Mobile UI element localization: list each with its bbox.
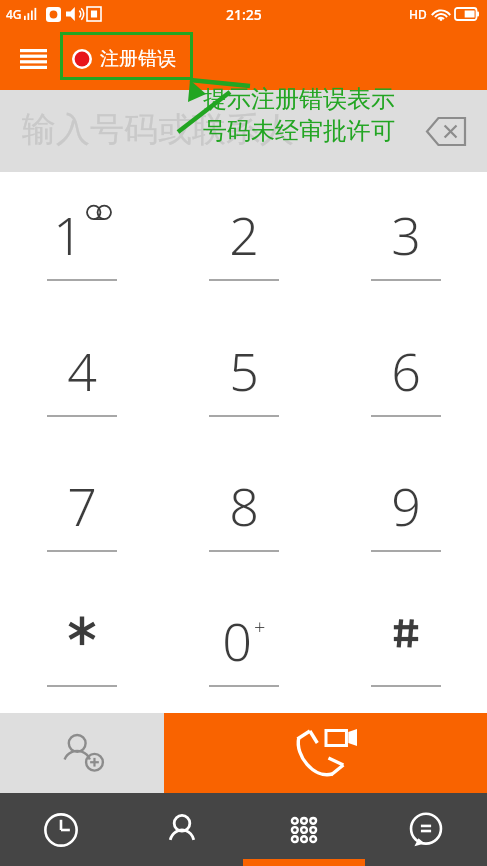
button[interactable]: Recent calls (0, 793, 121, 866)
staticText: 0 (222, 605, 252, 667)
staticText: 5 (229, 335, 259, 397)
staticText: 2 (229, 199, 259, 261)
button[interactable]: 8 (163, 443, 325, 578)
staticText: 3 (391, 199, 421, 261)
button[interactable]: 2 (163, 172, 325, 308)
button[interactable]: Backspace (419, 104, 473, 158)
button[interactable]: 3 (325, 172, 487, 308)
staticText: 号码未经审批许可 (203, 116, 395, 146)
button[interactable]: 1 (0, 172, 163, 308)
button[interactable] (0, 578, 163, 713)
staticText: 1 (53, 199, 83, 261)
button[interactable]: 9 (325, 443, 487, 578)
button[interactable]: 注册错误 (72, 47, 176, 71)
button[interactable]: Dialpad (243, 793, 365, 866)
staticText: + (254, 613, 266, 640)
staticText: 4 (67, 335, 97, 397)
button[interactable]: 7 (0, 443, 163, 578)
staticText: 6 (391, 335, 421, 397)
staticText: 9 (391, 470, 421, 532)
staticText: HD (409, 6, 427, 22)
button[interactable]: Messages (365, 793, 487, 866)
staticText: 提示注册错误表示 (203, 84, 395, 114)
button[interactable]: Video call (164, 713, 487, 793)
button[interactable]: Add contact (0, 713, 164, 793)
staticText: 输入号码或联系人 (22, 108, 294, 151)
staticText: 8 (229, 470, 259, 532)
staticText: 4G (6, 6, 22, 22)
button[interactable]: Menu (12, 38, 54, 80)
button[interactable]: 0 (163, 578, 325, 713)
staticText: 21:25 (226, 5, 262, 24)
staticText: 注册错误 (100, 47, 176, 71)
button[interactable]: Contacts (121, 793, 243, 866)
button[interactable]: 5 (163, 308, 325, 443)
button[interactable] (325, 578, 487, 713)
button[interactable]: 4 (0, 308, 163, 443)
staticText: 7 (67, 470, 97, 532)
button[interactable]: 6 (325, 308, 487, 443)
